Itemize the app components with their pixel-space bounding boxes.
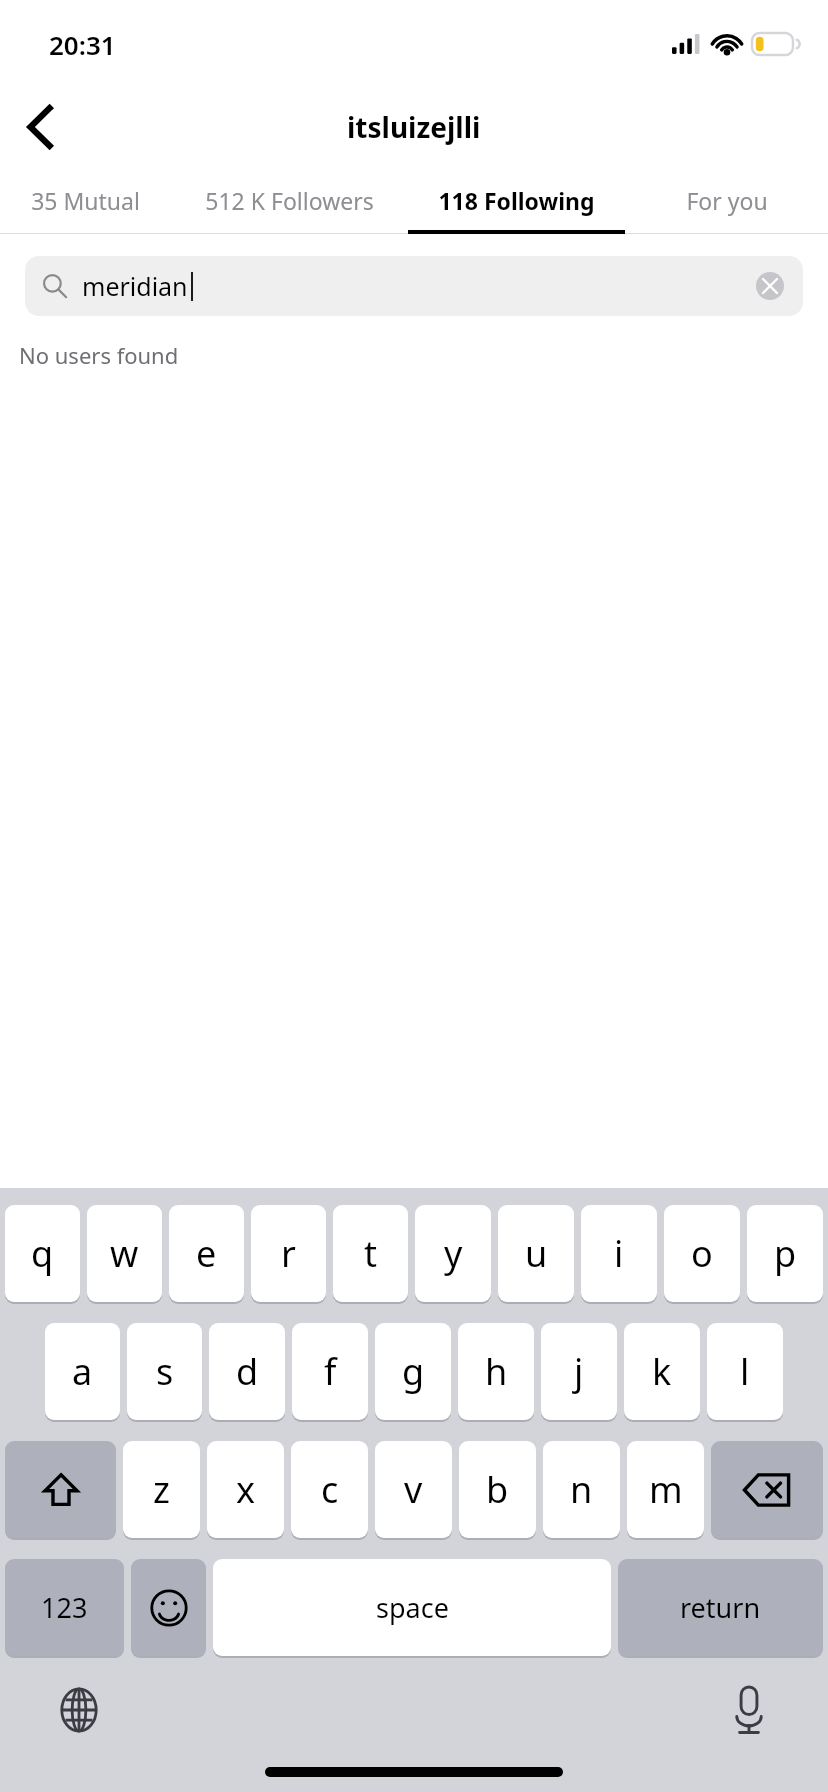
- button[interactable]: Back: [8, 95, 72, 159]
- staticText: No users found: [19, 340, 179, 370]
- staticText: 123: [41, 1589, 88, 1626]
- button[interactable]: u: [498, 1205, 574, 1302]
- button[interactable]: return: [618, 1559, 823, 1656]
- button[interactable]: n: [543, 1441, 620, 1538]
- button[interactable]: e: [169, 1205, 244, 1302]
- staticText: x: [236, 1465, 256, 1514]
- staticText: c: [321, 1465, 339, 1514]
- staticText: r: [281, 1229, 296, 1278]
- staticText: o: [691, 1229, 713, 1278]
- staticText: n: [570, 1465, 593, 1514]
- staticText: j: [574, 1347, 584, 1396]
- button[interactable]: c: [291, 1441, 368, 1538]
- button[interactable]: Clear search text: [752, 268, 788, 304]
- button[interactable]: g: [375, 1323, 451, 1420]
- button[interactable]: j: [541, 1323, 617, 1420]
- button[interactable]: Backspace: [711, 1441, 823, 1538]
- staticText: 20:31: [49, 27, 116, 62]
- button[interactable]: space: [213, 1559, 611, 1656]
- button[interactable]: z: [123, 1441, 200, 1538]
- button[interactable]: 512 K Followers: [170, 166, 408, 234]
- staticText: 35 Mutual: [31, 185, 140, 216]
- staticText: v: [404, 1465, 423, 1514]
- button[interactable]: a: [45, 1323, 120, 1420]
- staticText: q: [31, 1229, 54, 1278]
- staticText: f: [324, 1347, 337, 1396]
- staticText: d: [236, 1347, 259, 1396]
- button[interactable]: Switch keyboard language: [50, 1681, 108, 1739]
- staticText: t: [364, 1229, 377, 1278]
- button[interactable]: Dictation: [720, 1681, 778, 1739]
- staticText: a: [72, 1347, 93, 1396]
- button[interactable]: y: [415, 1205, 491, 1302]
- button[interactable]: l: [707, 1323, 783, 1420]
- button[interactable]: f: [292, 1323, 368, 1420]
- staticText: space: [376, 1589, 449, 1626]
- button[interactable]: q: [5, 1205, 80, 1302]
- staticText: s: [156, 1347, 174, 1396]
- staticText: 118 Following: [438, 185, 595, 216]
- staticText: i: [614, 1229, 624, 1278]
- button[interactable]: b: [459, 1441, 536, 1538]
- staticText: l: [740, 1347, 750, 1396]
- staticText: b: [486, 1465, 509, 1514]
- button[interactable]: p: [747, 1205, 823, 1302]
- button[interactable]: o: [664, 1205, 740, 1302]
- staticText: 512 K Followers: [205, 185, 374, 216]
- button[interactable]: t: [333, 1205, 408, 1302]
- button[interactable]: v: [375, 1441, 452, 1538]
- staticText: itsluizejlli: [347, 108, 481, 146]
- button[interactable]: k: [624, 1323, 700, 1420]
- button[interactable]: h: [458, 1323, 534, 1420]
- staticText: y: [444, 1229, 463, 1278]
- staticText: meridian: [82, 269, 188, 303]
- button[interactable]: w: [87, 1205, 162, 1302]
- button[interactable]: x: [207, 1441, 284, 1538]
- button[interactable]: s: [127, 1323, 202, 1420]
- button[interactable]: Shift: [5, 1441, 116, 1538]
- button[interactable]: d: [209, 1323, 285, 1420]
- button[interactable]: 35 Mutual: [0, 166, 170, 234]
- button[interactable]: m: [627, 1441, 704, 1538]
- staticText: u: [525, 1229, 548, 1278]
- staticText: g: [402, 1347, 425, 1396]
- button[interactable]: For you: [625, 166, 828, 234]
- staticText: m: [649, 1465, 683, 1514]
- staticText: p: [774, 1229, 797, 1278]
- staticText: h: [485, 1347, 508, 1396]
- button[interactable]: r: [251, 1205, 326, 1302]
- staticText: e: [196, 1229, 217, 1278]
- staticText: k: [652, 1347, 672, 1396]
- staticText: w: [110, 1229, 139, 1278]
- button[interactable]: Emoji keyboard: [131, 1559, 206, 1656]
- button[interactable]: meridian: [25, 256, 803, 316]
- button[interactable]: 123: [5, 1559, 124, 1656]
- button[interactable]: 118 Following: [408, 166, 625, 234]
- staticText: z: [153, 1465, 170, 1514]
- button[interactable]: i: [581, 1205, 657, 1302]
- staticText: For you: [686, 185, 768, 216]
- staticText: return: [680, 1589, 761, 1626]
